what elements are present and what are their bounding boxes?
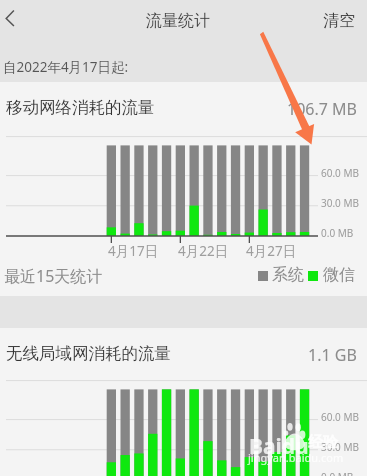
button[interactable]: Back — [0, 3, 40, 35]
staticText: 无线局域网消耗的流量 — [6, 343, 171, 364]
staticText: 106.7 MB — [287, 98, 357, 120]
staticText: 1.1 GB — [308, 344, 357, 366]
staticText: 最近15天统计 — [4, 265, 103, 287]
staticText: 0.0 MB — [321, 470, 354, 476]
staticText: Baidu — [249, 432, 309, 461]
button[interactable]: 无线局域网消耗的流量 — [0, 328, 367, 476]
button[interactable]: 移动网络消耗的流量 — [0, 82, 367, 296]
staticText: 微信 — [323, 265, 355, 285]
button[interactable]: 清空 — [311, 3, 367, 35]
staticText: jingyan.baidu.com — [248, 450, 344, 465]
staticText: 30.0 MB — [321, 440, 360, 454]
staticText: 清空 — [323, 11, 355, 31]
staticText: 经验 — [308, 433, 338, 452]
staticText: 0.0 MB — [321, 226, 354, 240]
staticText: 4月27日 — [246, 242, 297, 260]
staticText: 移动网络消耗的流量 — [6, 97, 155, 118]
staticText: 流量统计 — [146, 11, 210, 31]
staticText: 自2022年4月17日起: — [3, 58, 129, 76]
staticText: 系统 — [272, 265, 304, 285]
staticText: 60.0 MB — [321, 166, 360, 180]
staticText: 60.0 MB — [321, 410, 360, 424]
staticText: 4月22日 — [178, 242, 229, 260]
staticText: 4月17日 — [108, 242, 159, 260]
staticText: 30.0 MB — [321, 196, 360, 210]
